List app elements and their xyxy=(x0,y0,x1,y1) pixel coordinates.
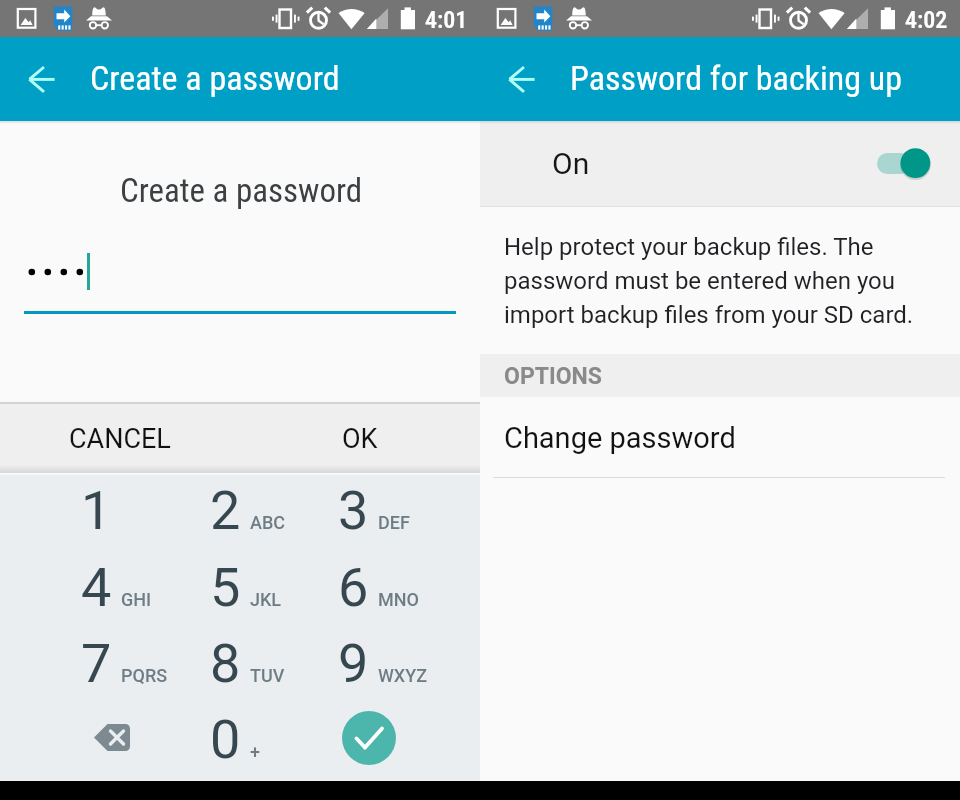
staticText: 6 xyxy=(338,556,369,619)
staticText: Help protect your backup files. The pass… xyxy=(504,233,922,329)
staticText: OK xyxy=(342,423,378,455)
button[interactable]: Change password xyxy=(480,397,960,482)
button[interactable]: 2 xyxy=(177,465,299,541)
staticText: Create a password xyxy=(90,58,340,98)
staticText: Password for backing up xyxy=(570,58,902,98)
staticText: CANCEL xyxy=(69,423,171,455)
button[interactable]: 3 xyxy=(305,465,427,541)
staticText: 9 xyxy=(338,632,369,695)
staticText: 4:02 xyxy=(905,6,948,34)
staticText: 2 xyxy=(210,479,241,542)
staticText: MNO xyxy=(378,589,419,610)
staticText: 4:01 xyxy=(425,6,468,34)
button[interactable]: On xyxy=(480,121,960,206)
staticText: 8 xyxy=(210,632,241,695)
button[interactable]: CANCEL xyxy=(0,404,240,473)
staticText: Create a password xyxy=(120,171,363,210)
staticText: WXYZ xyxy=(378,665,428,686)
button[interactable]: 0 xyxy=(177,694,299,770)
button[interactable]: 4 xyxy=(48,542,170,618)
staticText: TUV xyxy=(250,665,285,686)
button[interactable]: 9 xyxy=(305,618,427,694)
staticText: GHI xyxy=(121,589,152,610)
button[interactable]: 7 xyxy=(48,618,170,694)
staticText: On xyxy=(552,146,590,181)
staticText: 4 xyxy=(81,556,112,619)
staticText: Change password xyxy=(504,421,736,455)
button[interactable]: Back xyxy=(0,37,84,121)
button[interactable]: Confirm xyxy=(342,711,396,765)
staticText: 7 xyxy=(81,632,112,695)
button[interactable]: 6 xyxy=(305,542,427,618)
staticText: ABC xyxy=(250,512,286,533)
button[interactable]: Backspace xyxy=(60,695,148,781)
staticText: 3 xyxy=(338,479,369,542)
button[interactable]: Toggle backup password xyxy=(870,121,960,206)
staticText: OPTIONS xyxy=(504,363,602,390)
staticText: + xyxy=(250,741,261,762)
button[interactable]: OK xyxy=(240,404,480,473)
staticText: DEF xyxy=(378,512,410,533)
button[interactable]: 5 xyxy=(177,542,299,618)
button[interactable]: Back xyxy=(480,37,564,121)
staticText: JKL xyxy=(250,589,282,610)
button[interactable]: 1 xyxy=(48,465,170,541)
staticText: PQRS xyxy=(121,665,168,686)
staticText: 5 xyxy=(210,556,241,619)
staticText: 0 xyxy=(210,708,241,771)
button[interactable]: 8 xyxy=(177,618,299,694)
staticText: 1 xyxy=(81,479,112,542)
